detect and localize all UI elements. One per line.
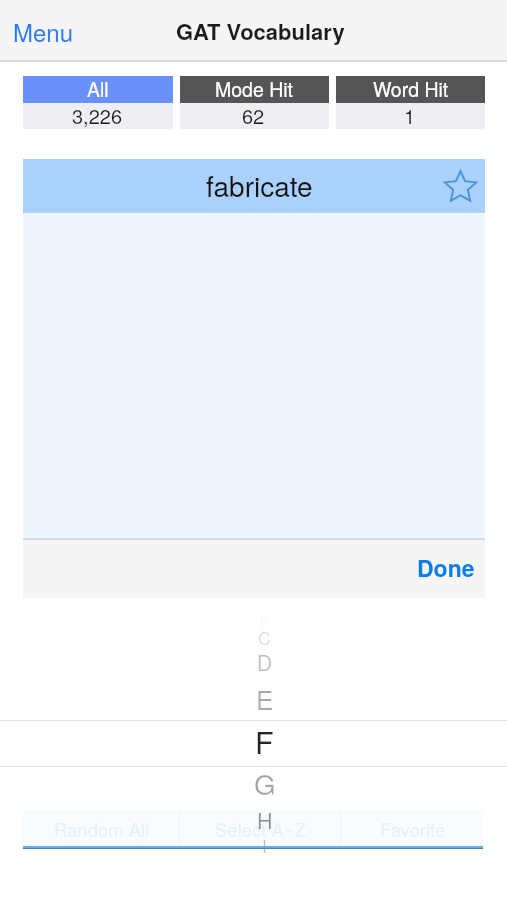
staticText: B [260, 613, 269, 632]
staticText: 1 [404, 101, 416, 127]
button[interactable]: Favorite [444, 171, 477, 204]
button[interactable]: Select A~Z [180, 810, 340, 847]
button[interactable]: Favorite [341, 810, 483, 847]
staticText: All [87, 75, 109, 102]
staticText: F [255, 719, 274, 763]
staticText: fabricate [206, 165, 313, 205]
staticText: Random All [54, 816, 150, 842]
staticText: Select A~Z [215, 816, 307, 842]
button[interactable]: Menu [13, 14, 74, 48]
staticText: 3,226 [72, 101, 123, 127]
staticText: G [254, 763, 276, 803]
staticText: D [257, 647, 273, 677]
button[interactable]: B [0, 598, 507, 900]
button[interactable]: Word Hit [336, 76, 485, 129]
staticText: H [257, 804, 273, 835]
staticText: Mode Hit [215, 75, 294, 102]
staticText: E [256, 680, 274, 717]
button[interactable]: Mode Hit [180, 76, 329, 129]
staticText: Favorite [380, 816, 446, 842]
staticText: Word Hit [373, 75, 449, 102]
staticText: C [258, 625, 271, 650]
button[interactable]: All [23, 76, 173, 129]
staticText: 62 [242, 101, 265, 127]
button[interactable]: Done [417, 551, 475, 584]
staticText: I [262, 833, 267, 857]
staticText: GAT Vocabulary [176, 15, 345, 47]
button[interactable]: Random All [23, 810, 179, 847]
